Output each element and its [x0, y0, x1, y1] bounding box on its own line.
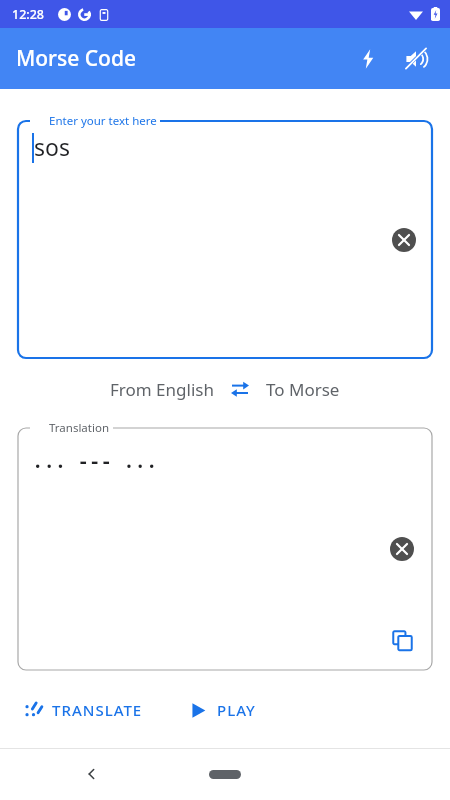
staticText: Translation [49, 420, 110, 436]
button[interactable]: Swap languages [220, 369, 260, 409]
button[interactable]: From English [104, 374, 220, 405]
button[interactable]: To Morse [260, 374, 346, 405]
button[interactable]: Clear [382, 529, 422, 569]
button[interactable]: Back [72, 754, 112, 794]
staticText: Morse Code [16, 44, 136, 73]
button[interactable]: Mute [392, 35, 440, 83]
button[interactable]: PLAY [179, 692, 266, 728]
staticText: Enter your text here [49, 113, 157, 129]
button[interactable]: TRANSLATE [14, 692, 153, 728]
staticText: ... --- ... [32, 448, 158, 474]
button[interactable]: Flash [344, 35, 392, 83]
staticText: sos [34, 131, 70, 162]
staticText: 12:28 [12, 6, 45, 23]
button[interactable]: Clear [384, 220, 424, 260]
staticText: TRANSLATE [52, 700, 143, 720]
staticText: PLAY [217, 700, 256, 720]
button[interactable]: Copy [382, 620, 422, 660]
staticText: From English [110, 378, 214, 401]
staticText: To Morse [266, 378, 340, 401]
button[interactable]: Home [209, 770, 241, 779]
